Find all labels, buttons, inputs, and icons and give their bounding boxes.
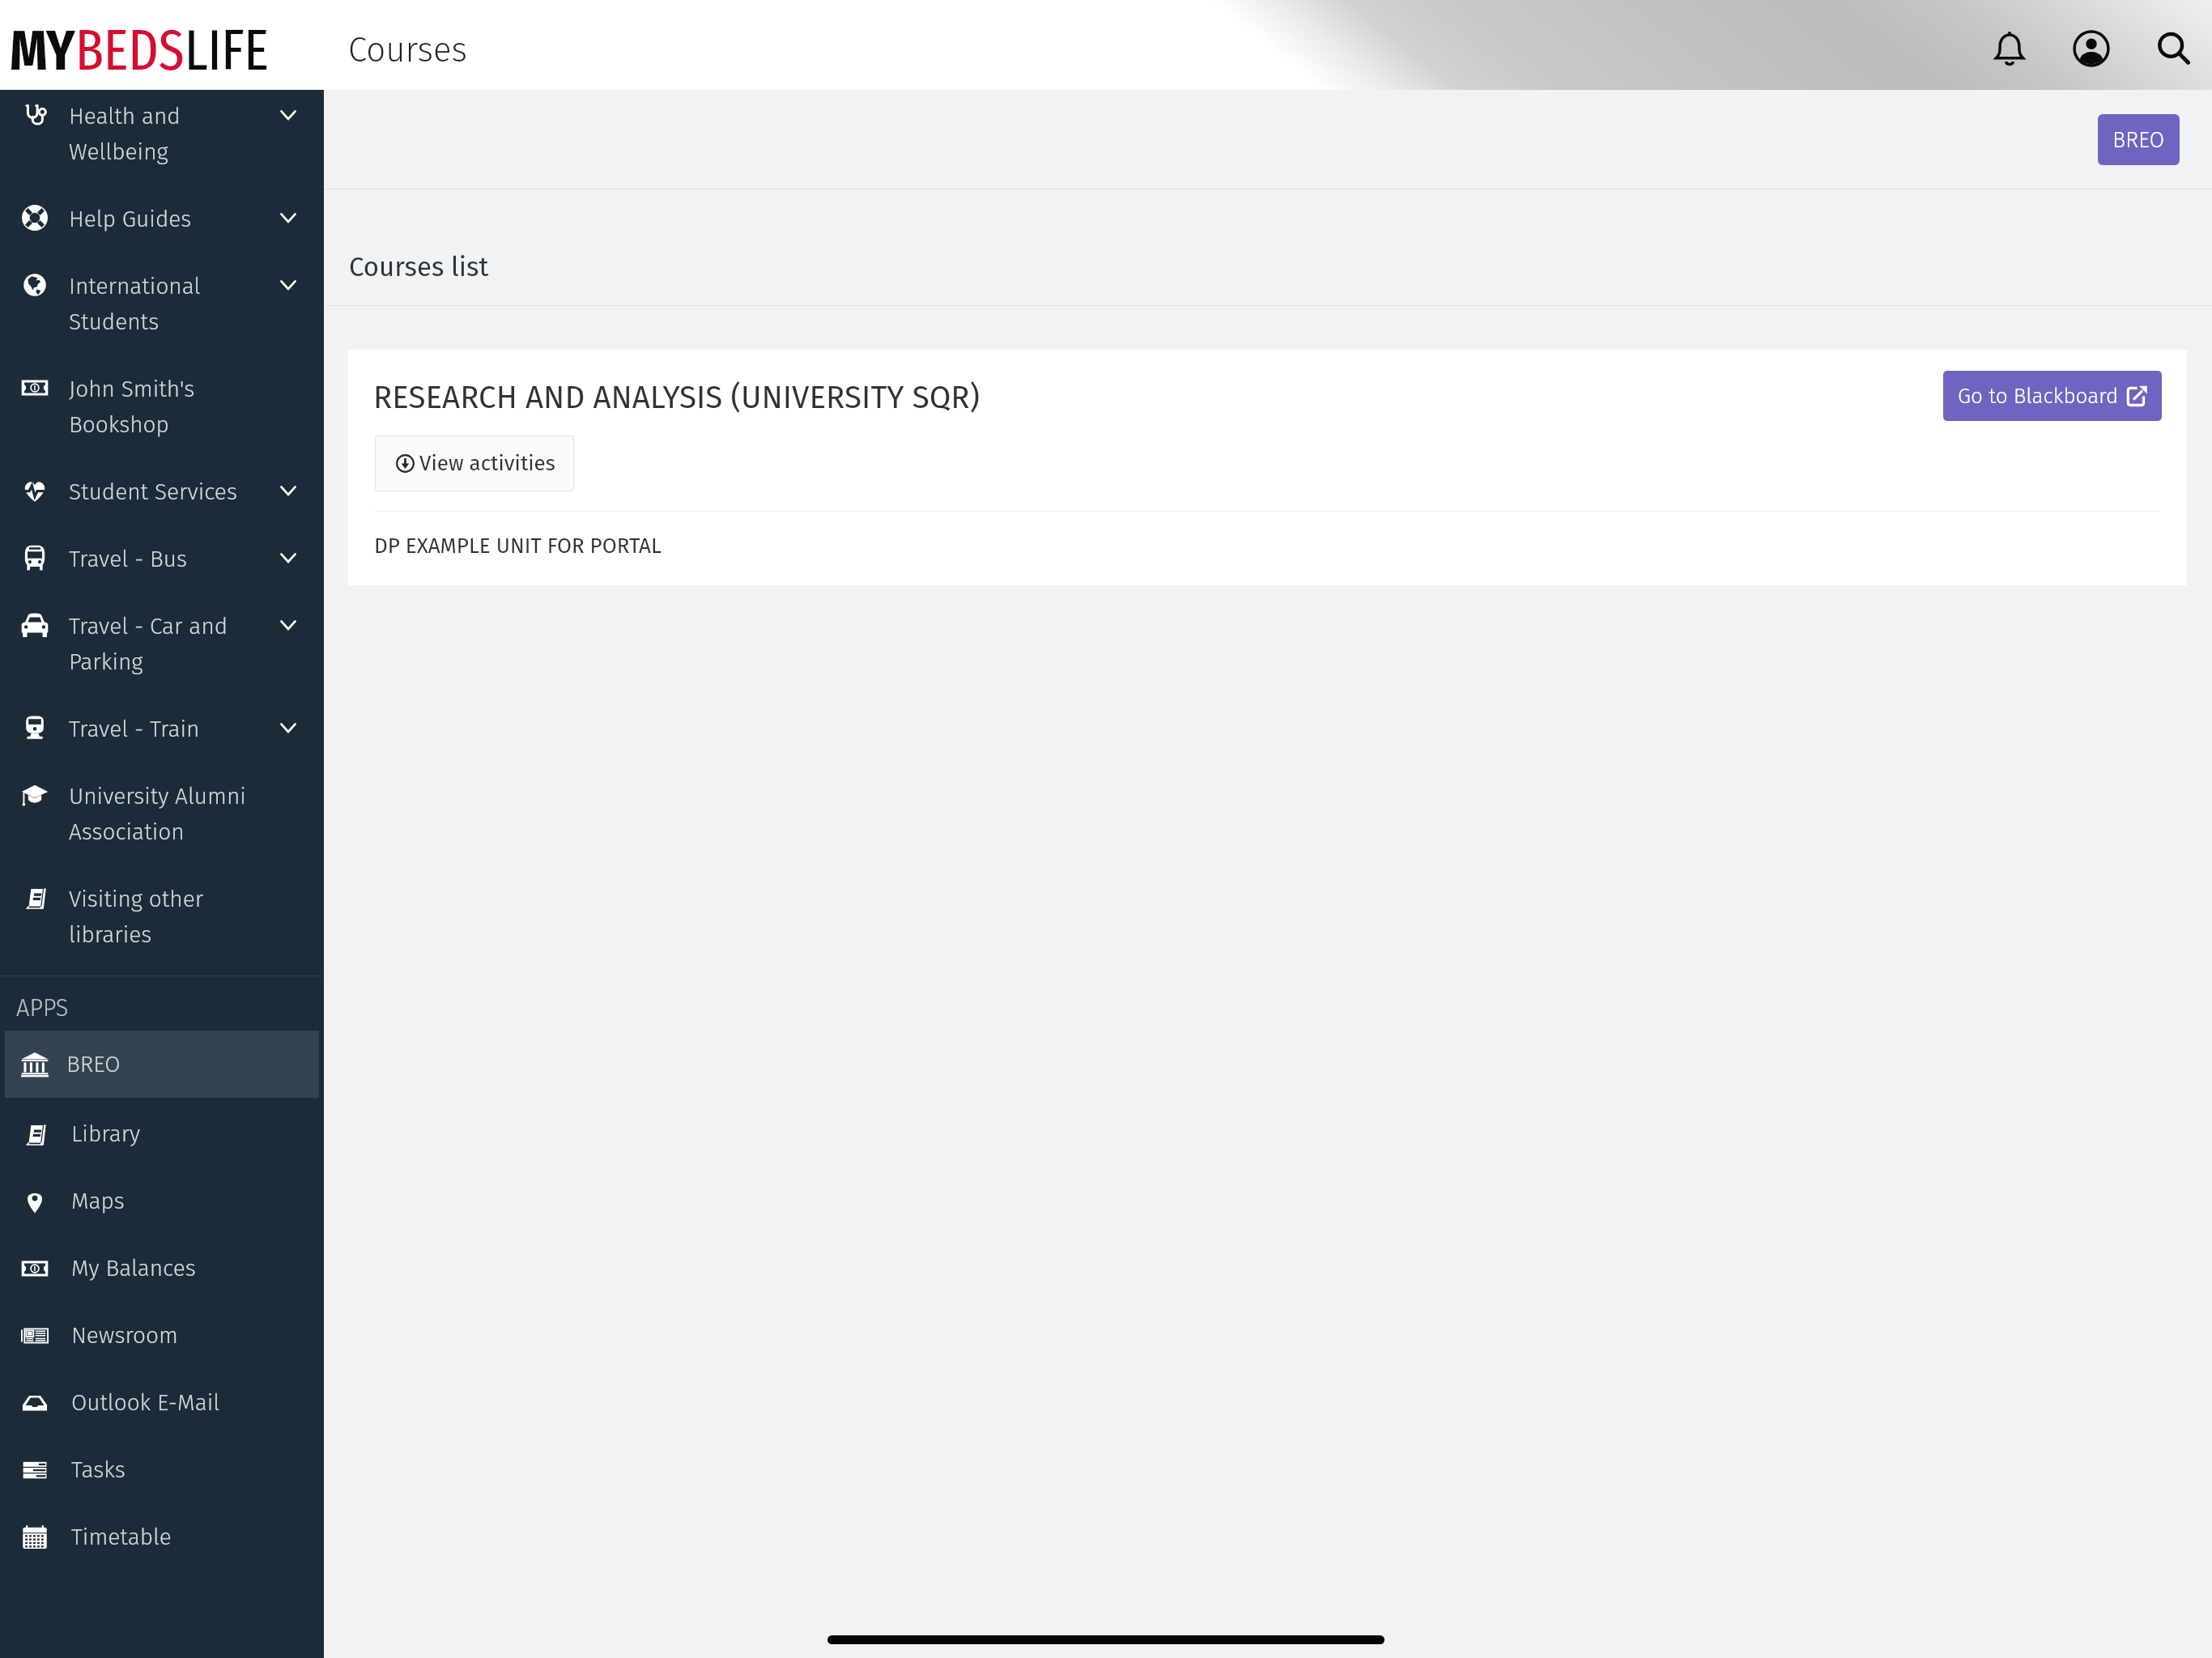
staticText: University Alumni Association [69,783,265,846]
staticText: Travel - Train [69,716,265,743]
button[interactable]: BREO [2098,114,2180,165]
button[interactable]: Newsroom [0,1302,324,1369]
button[interactable]: Outlook E-Mail [0,1369,324,1436]
button[interactable]: Student Services [0,466,324,533]
staticText: Travel - Car and Parking [69,613,265,676]
button[interactable]: MY [10,17,270,85]
staticText: BEDS [75,17,185,85]
button[interactable]: Travel - Bus [0,533,324,600]
button[interactable]: Library [0,1100,324,1167]
button[interactable]: Tasks [0,1436,324,1503]
button[interactable]: University Alumni Association [0,770,324,873]
button[interactable]: Search [2148,23,2198,74]
button[interactable]: Travel - Car and Parking [0,600,324,703]
button[interactable]: Notifications [1984,23,2035,74]
staticText: RESEARCH AND ANALYSIS (UNIVERSITY SQR) [373,379,981,416]
staticText: Timetable [71,1524,172,1551]
staticText: International Students [69,273,265,336]
button[interactable]: BREO [5,1031,319,1098]
button[interactable]: John Smith's Bookshop [0,363,324,466]
staticText: Newsroom [71,1322,178,1350]
staticText: Health and Wellbeing [69,103,265,166]
staticText: Library [71,1120,141,1148]
button[interactable]: Timetable [0,1503,324,1571]
staticText: Visiting other libraries [69,886,265,949]
staticText: My Balances [71,1255,196,1282]
staticText: Maps [71,1188,125,1215]
button[interactable]: View activities [375,436,574,491]
button[interactable]: Maps [0,1167,324,1235]
staticText: Travel - Bus [69,546,265,573]
staticText: BREO [2112,127,2165,153]
staticText: Outlook E-Mail [71,1389,220,1417]
staticText: Courses [348,30,467,70]
button[interactable]: Visiting other libraries [0,873,324,976]
button[interactable]: Go to Blackboard [1943,371,2162,421]
staticText: APPS [16,994,69,1022]
staticText: Courses list [349,251,489,283]
staticText: DP EXAMPLE UNIT FOR PORTAL [374,534,661,559]
staticText: View activities [419,451,555,476]
staticText: LIFE [185,17,270,85]
button[interactable]: Account [2066,23,2116,74]
staticText: MY [10,17,75,85]
staticText: John Smith's Bookshop [69,376,265,439]
button[interactable]: My Balances [0,1235,324,1302]
staticText: Tasks [71,1456,125,1484]
button[interactable]: International Students [0,260,324,363]
staticText: Go to Blackboard [1958,384,2119,409]
staticText: BREO [66,1051,121,1078]
button[interactable]: Help Guides [0,193,324,260]
staticText: Help Guides [69,206,265,233]
staticText: Student Services [69,478,265,506]
button[interactable]: Travel - Train [0,703,324,770]
button[interactable]: Health and Wellbeing [0,90,324,193]
